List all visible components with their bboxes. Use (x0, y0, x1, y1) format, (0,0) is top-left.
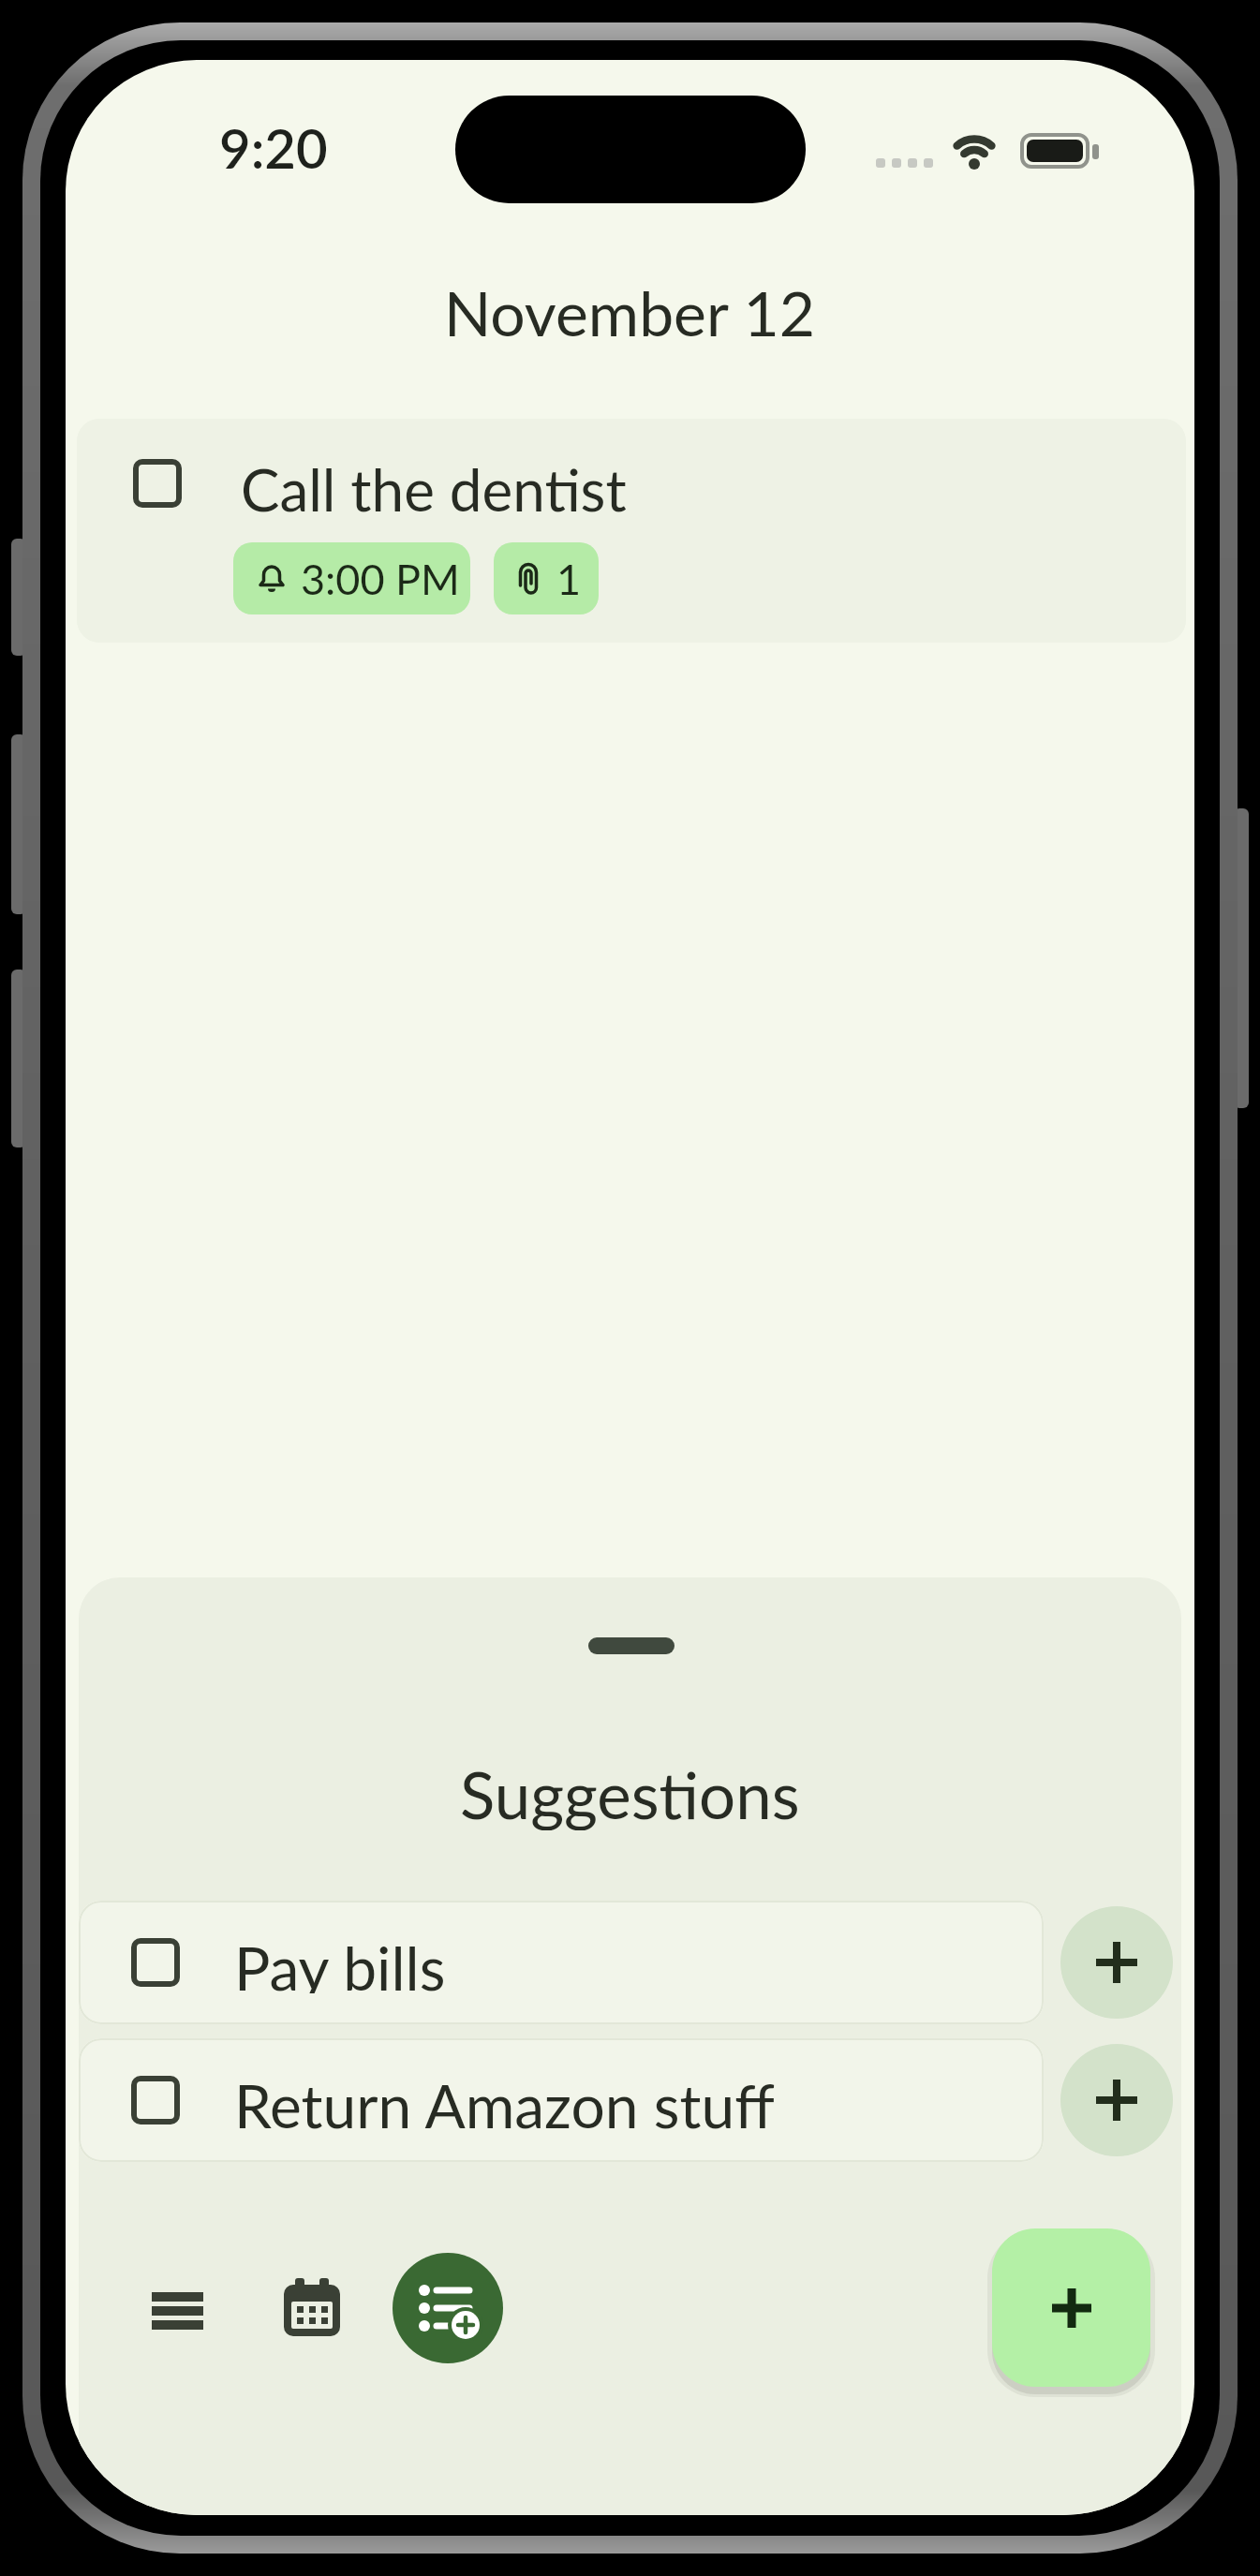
button[interactable]: 1 (494, 542, 599, 614)
button[interactable] (131, 2076, 180, 2124)
button[interactable]: 3:00 PM (233, 542, 470, 614)
staticText: 9:20 (219, 115, 328, 181)
button[interactable] (1060, 2044, 1173, 2156)
staticText: Pay bills (234, 1932, 446, 1993)
staticText: Return Amazon stuff (234, 2069, 775, 2131)
button[interactable] (131, 1938, 180, 1987)
button[interactable] (133, 459, 182, 508)
staticText: Call the dentist (241, 454, 627, 516)
button[interactable]: Call the dentist (77, 419, 1186, 643)
button[interactable]: Pay bills (79, 1901, 1044, 2024)
staticText: 1 (556, 554, 582, 604)
button[interactable] (1060, 1906, 1173, 2019)
staticText: Suggestions (460, 1755, 800, 1830)
button[interactable] (393, 2253, 503, 2363)
button[interactable] (141, 2281, 215, 2341)
staticText: November 12 (444, 275, 816, 349)
button[interactable] (284, 2278, 340, 2336)
button[interactable]: Return Amazon stuff (79, 2038, 1044, 2162)
button[interactable] (992, 2228, 1150, 2387)
staticText: 3:00 PM (301, 554, 460, 604)
